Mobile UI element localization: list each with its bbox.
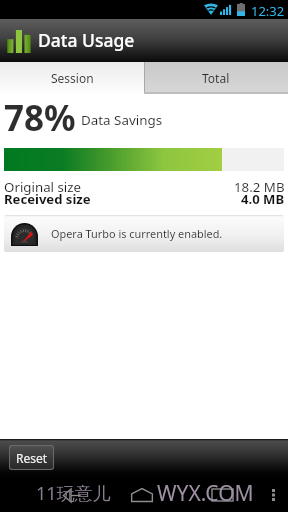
staticText: 78% xyxy=(4,94,76,142)
button[interactable]: Opera Turbo is currently enabled. xyxy=(4,215,284,252)
staticText: Data Savings xyxy=(81,111,163,129)
button[interactable]: Back xyxy=(50,478,94,512)
staticText: WYX.COM xyxy=(157,479,254,508)
staticText: 11玩意儿 xyxy=(36,481,111,506)
staticText: Total xyxy=(202,70,230,86)
staticText: Original size xyxy=(4,178,82,196)
staticText: Session xyxy=(51,70,94,86)
staticText: Reset xyxy=(16,450,48,466)
staticText: 18.2 MB xyxy=(234,178,285,196)
staticText: 4.0 MB xyxy=(241,190,285,208)
staticText: Received size xyxy=(4,190,91,208)
staticText: 12:32 xyxy=(251,2,285,20)
button[interactable]: Reset xyxy=(10,446,53,469)
staticText: Data Usage xyxy=(38,28,135,52)
button[interactable]: More options xyxy=(258,478,288,512)
staticText: Opera Turbo is currently enabled. xyxy=(51,226,223,241)
button[interactable]: Total xyxy=(144,62,288,93)
button[interactable]: Home xyxy=(120,478,164,512)
button[interactable]: Recent apps xyxy=(200,478,244,512)
button[interactable]: Session xyxy=(0,62,144,93)
